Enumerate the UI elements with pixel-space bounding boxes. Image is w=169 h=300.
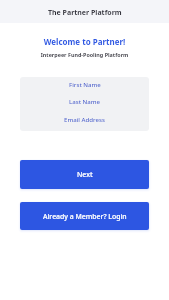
button[interactable]: Email Address bbox=[20, 111, 149, 129]
staticText: First Name bbox=[69, 80, 101, 88]
button[interactable]: Last Name bbox=[20, 93, 149, 111]
staticText: Next bbox=[77, 170, 93, 179]
staticText: The Partner Platform bbox=[48, 8, 122, 18]
staticText: Already a Member? Login bbox=[43, 212, 127, 221]
button[interactable]: Next bbox=[20, 160, 149, 189]
staticText: Welcome to Partner! bbox=[0, 36, 169, 47]
staticText: Last Name bbox=[69, 97, 101, 105]
button[interactable]: First Name bbox=[20, 77, 149, 94]
button[interactable]: Already a Member? Login bbox=[20, 202, 149, 230]
staticText: Interpeer Fund-Pooling Platform bbox=[0, 51, 169, 58]
staticText: Email Address bbox=[64, 115, 105, 123]
